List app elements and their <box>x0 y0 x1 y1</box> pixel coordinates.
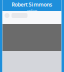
staticText: Robert Simmons <box>11 1 52 8</box>
staticText: online <box>27 8 37 13</box>
